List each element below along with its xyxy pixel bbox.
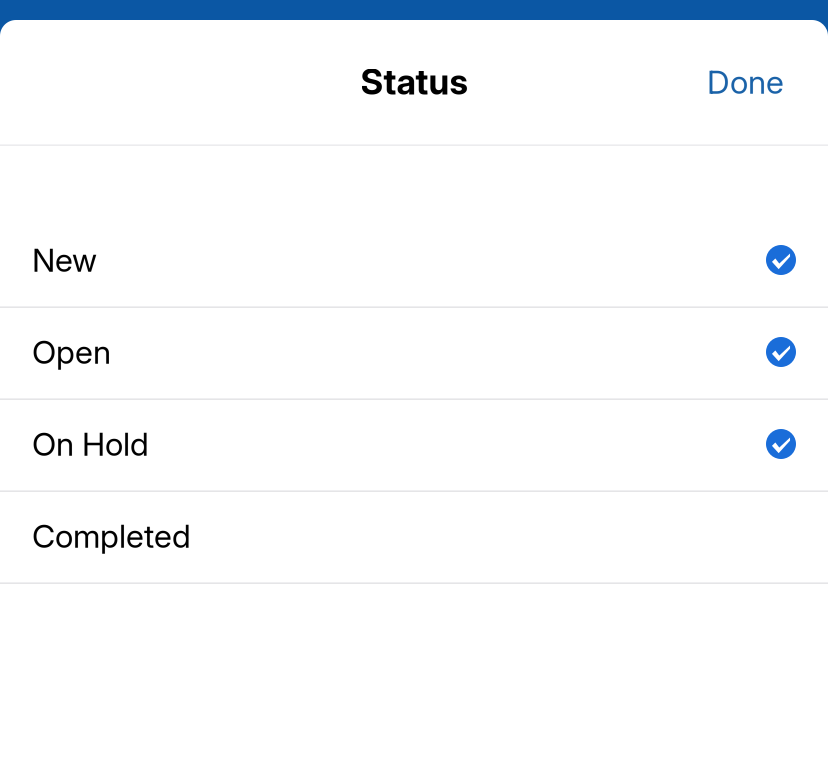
staticText: Status xyxy=(360,61,467,103)
button[interactable]: Completed xyxy=(0,492,828,584)
staticText: On Hold xyxy=(32,425,149,463)
staticText: New xyxy=(32,241,97,279)
button[interactable]: Done xyxy=(683,45,828,119)
staticText: Completed xyxy=(32,517,191,555)
staticText: Open xyxy=(32,333,111,371)
button[interactable]: Open xyxy=(0,308,828,400)
button[interactable]: On Hold xyxy=(0,400,828,492)
button[interactable]: New xyxy=(0,216,828,308)
staticText: Done xyxy=(707,63,784,101)
